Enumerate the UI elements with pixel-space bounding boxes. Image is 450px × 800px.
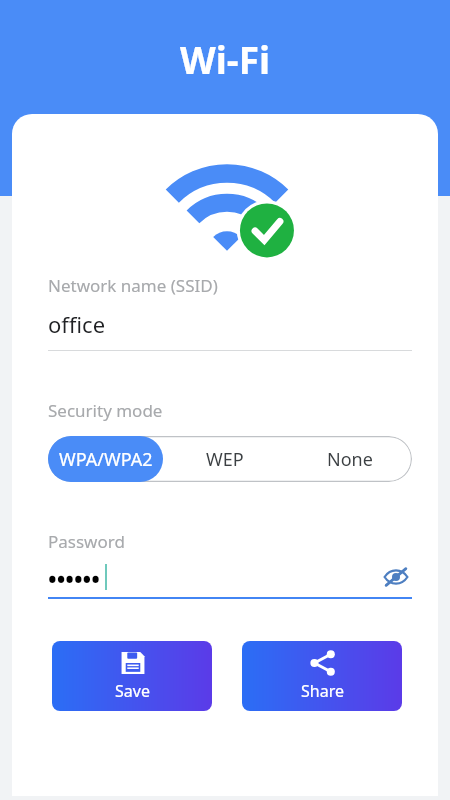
button[interactable]: office xyxy=(48,309,412,339)
staticText: Network name (SSID) xyxy=(48,274,218,297)
staticText: Password xyxy=(48,530,125,553)
button[interactable]: None xyxy=(287,436,412,482)
staticText: office xyxy=(48,309,106,339)
button[interactable]: WPA/WPA2 xyxy=(48,436,163,482)
button[interactable]: Show password xyxy=(380,563,412,591)
staticText: None xyxy=(327,447,373,472)
button[interactable]: •••••• xyxy=(48,563,412,591)
staticText: Security mode xyxy=(48,399,163,422)
button[interactable]: WEP xyxy=(163,436,287,482)
staticText: Save xyxy=(115,680,150,702)
staticText: Share xyxy=(301,680,344,702)
staticText: WPA/WPA2 xyxy=(59,447,153,472)
button[interactable]: Save xyxy=(52,641,212,711)
staticText: Wi-Fi xyxy=(0,34,450,84)
button[interactable]: Share xyxy=(242,641,402,711)
staticText: WEP xyxy=(206,447,244,472)
staticText: •••••• xyxy=(48,563,100,591)
